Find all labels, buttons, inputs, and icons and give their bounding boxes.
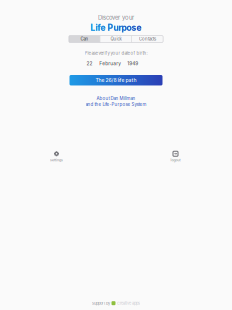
button[interactable]: logout (162, 151, 188, 163)
staticText: February (99, 60, 121, 66)
staticText: logout (170, 158, 180, 162)
staticText: 22 (86, 60, 92, 66)
staticText: Discover your (98, 14, 134, 21)
button[interactable]: The 26/8 life path (69, 75, 162, 85)
staticText: Contacts (139, 36, 156, 42)
staticText: Can (80, 36, 88, 42)
staticText: 1949 (127, 60, 138, 66)
staticText: Life Purpose (90, 23, 141, 33)
staticText: Please verify your date of birth: (84, 50, 147, 56)
staticText: Creative apps (117, 301, 140, 306)
button[interactable]: About Dan Millman (85, 96, 146, 107)
staticText: The 26/8 life path (95, 77, 136, 83)
button[interactable]: Quick (100, 36, 131, 42)
button[interactable]: settings (43, 151, 69, 163)
button[interactable]: Can (69, 36, 100, 42)
staticText: About Dan Millman (96, 96, 135, 101)
staticText: support by (92, 301, 110, 306)
staticText: settings (50, 158, 63, 162)
staticText: and the Life-Purpose System (85, 102, 146, 107)
staticText: Quick (110, 36, 121, 42)
button[interactable]: Contacts (132, 36, 163, 42)
